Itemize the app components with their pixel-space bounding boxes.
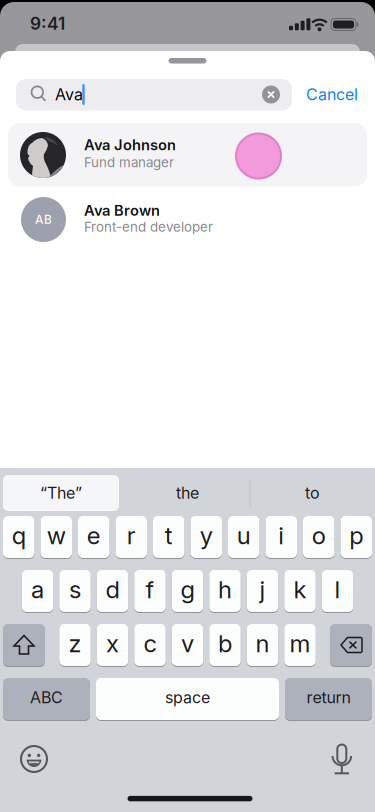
staticText: n bbox=[255, 629, 269, 658]
button[interactable]: space bbox=[96, 677, 279, 720]
staticText: h bbox=[218, 575, 232, 604]
button[interactable]: g bbox=[172, 569, 203, 612]
button[interactable]: s bbox=[59, 569, 91, 612]
staticText: q bbox=[12, 521, 26, 550]
staticText: 9:41 bbox=[30, 13, 65, 34]
button[interactable]: w bbox=[40, 515, 72, 558]
staticText: Ava Johnson bbox=[84, 136, 176, 154]
button[interactable]: ABC bbox=[3, 677, 90, 720]
button[interactable]: p bbox=[340, 515, 372, 558]
button[interactable]: o bbox=[303, 515, 334, 558]
staticText: m bbox=[289, 629, 310, 658]
staticText: ABC bbox=[30, 688, 63, 707]
button[interactable]: Shift bbox=[3, 623, 45, 666]
staticText: o bbox=[312, 521, 326, 550]
button[interactable]: Emoji bbox=[20, 745, 48, 773]
staticText: Front-end developer bbox=[84, 219, 213, 235]
button[interactable]: j bbox=[247, 569, 278, 612]
staticText: j bbox=[259, 575, 265, 604]
button[interactable]: Delete bbox=[330, 623, 372, 666]
staticText: b bbox=[218, 629, 232, 658]
staticText: x bbox=[106, 629, 119, 658]
staticText: z bbox=[68, 629, 81, 658]
staticText: s bbox=[69, 575, 81, 604]
button[interactable]: Clear text bbox=[262, 85, 280, 103]
staticText: v bbox=[181, 629, 194, 658]
button[interactable]: Ava Johnson bbox=[0, 123, 375, 186]
button[interactable]: a bbox=[22, 569, 53, 612]
staticText: a bbox=[31, 575, 44, 604]
button[interactable]: q bbox=[3, 515, 34, 558]
staticText: i bbox=[278, 521, 284, 550]
button[interactable]: h bbox=[209, 569, 241, 612]
button[interactable]: l bbox=[322, 569, 353, 612]
staticText: Fund manager bbox=[84, 154, 174, 170]
staticText: Ava bbox=[55, 85, 83, 104]
button[interactable]: AB bbox=[0, 186, 375, 250]
staticText: k bbox=[293, 575, 306, 604]
button[interactable]: m bbox=[284, 623, 316, 666]
staticText: e bbox=[87, 521, 101, 550]
button[interactable]: b bbox=[209, 623, 241, 666]
button[interactable]: t bbox=[153, 515, 184, 558]
button[interactable]: r bbox=[115, 515, 147, 558]
staticText: “The” bbox=[40, 484, 82, 502]
staticText: space bbox=[165, 688, 210, 707]
button[interactable]: k bbox=[284, 569, 316, 612]
button[interactable]: i bbox=[265, 515, 297, 558]
button[interactable]: “The” bbox=[3, 475, 119, 511]
button[interactable]: to bbox=[257, 475, 367, 511]
staticText: Ava Brown bbox=[84, 202, 160, 219]
staticText: return bbox=[306, 688, 350, 707]
button[interactable]: f bbox=[134, 569, 166, 612]
staticText: w bbox=[47, 521, 66, 550]
staticText: f bbox=[145, 575, 154, 604]
button[interactable]: Dictation bbox=[327, 745, 357, 775]
staticText: d bbox=[105, 575, 119, 604]
staticText: g bbox=[180, 575, 194, 604]
staticText: r bbox=[127, 521, 136, 550]
button[interactable]: return bbox=[285, 677, 372, 720]
button[interactable]: v bbox=[172, 623, 203, 666]
button[interactable]: y bbox=[190, 515, 222, 558]
button[interactable]: e bbox=[78, 515, 109, 558]
button[interactable]: the bbox=[132, 475, 242, 511]
button[interactable]: d bbox=[97, 569, 128, 612]
staticText: c bbox=[143, 629, 156, 658]
staticText: AB bbox=[35, 212, 52, 227]
staticText: to bbox=[305, 484, 320, 502]
staticText: t bbox=[165, 521, 173, 550]
staticText: Cancel bbox=[306, 85, 358, 104]
button[interactable]: Search bbox=[16, 79, 292, 110]
staticText: u bbox=[237, 521, 251, 550]
button[interactable]: x bbox=[97, 623, 128, 666]
staticText: y bbox=[200, 521, 213, 550]
button[interactable]: Cancel bbox=[306, 85, 358, 104]
button[interactable]: u bbox=[228, 515, 259, 558]
button[interactable]: n bbox=[247, 623, 278, 666]
button[interactable]: z bbox=[59, 623, 91, 666]
staticText: l bbox=[334, 575, 340, 604]
button[interactable]: c bbox=[134, 623, 166, 666]
staticText: p bbox=[349, 521, 363, 550]
staticText: the bbox=[176, 484, 199, 502]
